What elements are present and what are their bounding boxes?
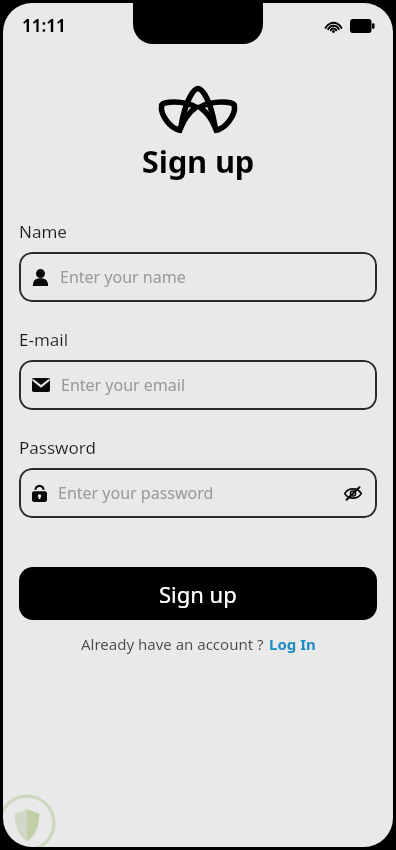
staticText: Enter your password bbox=[58, 482, 342, 504]
staticText: Sign up bbox=[3, 140, 393, 182]
button[interactable]: Log In bbox=[269, 634, 316, 654]
staticText: E-mail bbox=[19, 328, 69, 351]
staticText: Enter your email bbox=[61, 374, 364, 396]
button[interactable]: Enter your name bbox=[19, 252, 377, 302]
other: App logo bbox=[159, 86, 237, 132]
button[interactable]: Show password bbox=[342, 482, 364, 504]
staticText: Log In bbox=[269, 634, 316, 654]
staticText: Enter your name bbox=[60, 266, 364, 288]
other: Wi-Fi bbox=[324, 16, 343, 35]
button[interactable]: Enter your email bbox=[19, 360, 377, 410]
staticText: Sign up bbox=[159, 579, 237, 609]
other: Battery bbox=[350, 19, 375, 33]
staticText: Already have an account ? bbox=[81, 634, 264, 654]
staticText: 11:11 bbox=[22, 14, 66, 37]
button[interactable]: Enter your password bbox=[19, 468, 377, 518]
button[interactable]: Sign up bbox=[19, 567, 377, 620]
staticText: Password bbox=[19, 436, 96, 459]
staticText: Name bbox=[19, 220, 67, 243]
